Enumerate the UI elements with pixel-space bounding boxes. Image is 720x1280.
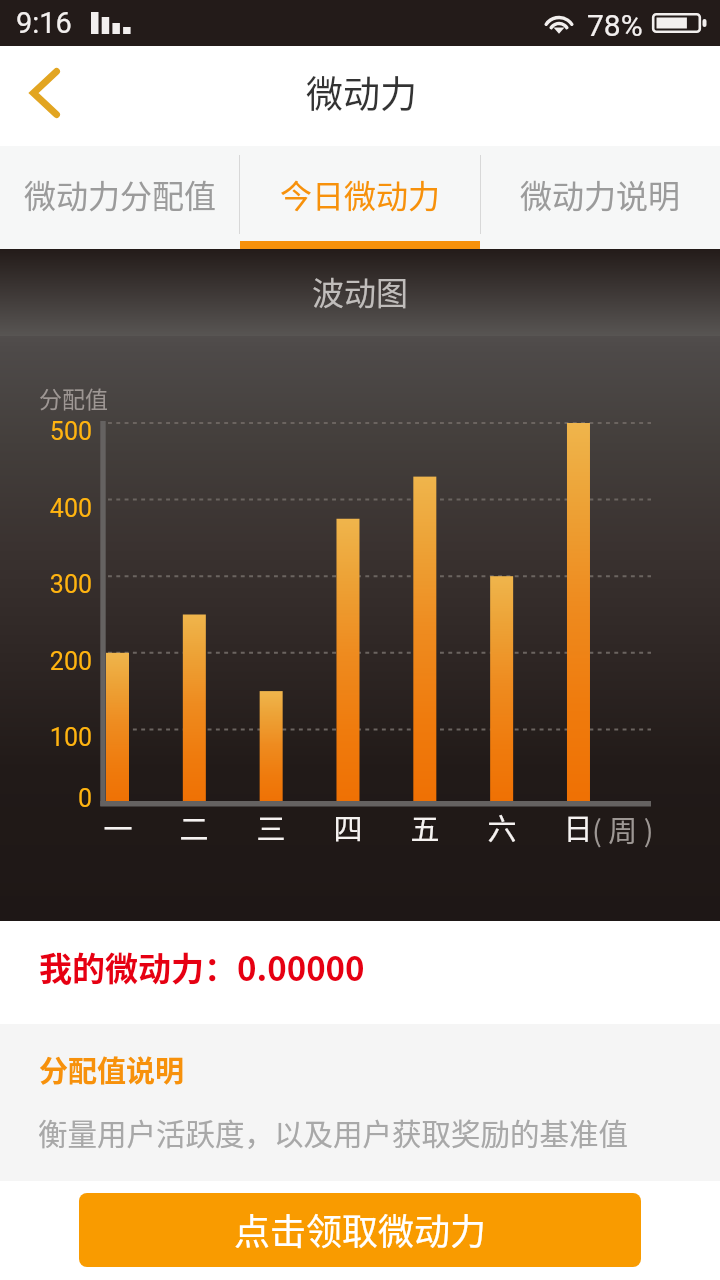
staticText: 今日微动力 <box>280 171 441 217</box>
staticText: 78% <box>587 8 643 43</box>
staticText: 微动力 <box>306 65 417 119</box>
staticText: 四 <box>318 806 378 848</box>
staticText: 9:16 <box>16 6 72 40</box>
staticText: 三 <box>241 806 301 848</box>
staticText: 二 <box>164 806 224 848</box>
staticText: 微动力说明 <box>520 171 681 217</box>
staticText: 点击领取微动力 <box>234 1203 487 1255</box>
button[interactable]: Back <box>0 46 92 146</box>
staticText: 500 <box>0 417 92 446</box>
staticText: 日 <box>548 806 608 848</box>
staticText: 400 <box>0 494 92 523</box>
staticText: 分配值说明 <box>39 1048 185 1090</box>
button[interactable]: 点击领取微动力 <box>79 1193 641 1267</box>
staticText: 0 <box>0 784 92 813</box>
button[interactable]: 微动力分配值 <box>0 146 240 249</box>
staticText: 分配值 <box>39 381 108 414</box>
staticText: 波动图 <box>312 268 409 314</box>
staticText: 微动力分配值 <box>24 171 217 217</box>
staticText: 我的微动力：0.00000 <box>39 943 365 991</box>
button[interactable]: 微动力说明 <box>480 146 720 249</box>
staticText: 五 <box>395 806 455 848</box>
staticText: 300 <box>0 570 92 599</box>
staticText: ( 周 ) <box>592 808 654 850</box>
button[interactable]: 今日微动力 <box>240 146 480 249</box>
staticText: 200 <box>0 647 92 676</box>
staticText: 衡量用户活跃度，以及用户获取奖励的基准值 <box>38 1111 629 1154</box>
staticText: 六 <box>472 806 532 848</box>
staticText: 100 <box>0 723 92 752</box>
staticText: 一 <box>88 806 148 848</box>
